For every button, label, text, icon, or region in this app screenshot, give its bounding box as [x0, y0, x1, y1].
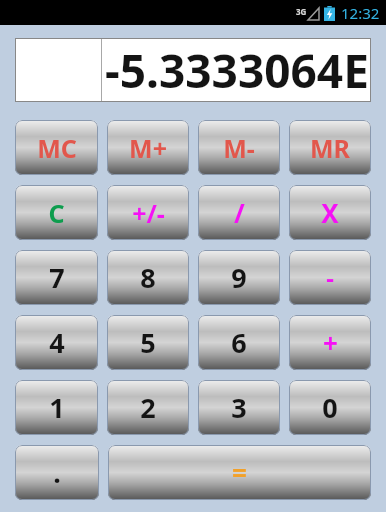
staticText: =	[232, 455, 247, 490]
button[interactable]: +	[289, 315, 371, 370]
other: Signal strength	[308, 8, 319, 20]
staticText: 7	[49, 259, 65, 296]
button[interactable]: -5.3333064E	[16, 39, 370, 101]
staticText: 3G	[296, 6, 307, 17]
staticText: +/-	[132, 196, 165, 230]
button[interactable]: +/-	[107, 185, 189, 240]
button[interactable]: 4	[15, 315, 98, 370]
button[interactable]: M+	[107, 120, 189, 175]
staticText: M-	[223, 131, 255, 165]
button[interactable]: .	[15, 445, 99, 500]
staticText: 6	[231, 324, 247, 361]
staticText: .	[53, 454, 61, 491]
button[interactable]: M-	[198, 120, 280, 175]
button[interactable]: -	[289, 250, 371, 305]
button[interactable]: X	[289, 185, 371, 240]
button[interactable]: MC	[15, 120, 98, 175]
button[interactable]: C	[15, 185, 98, 240]
staticText: 0	[322, 389, 338, 426]
staticText: 8	[140, 259, 156, 296]
staticText: 5	[140, 324, 156, 361]
staticText: 2	[140, 389, 156, 426]
staticText: 3	[231, 389, 247, 426]
staticText: 9	[231, 259, 247, 296]
button[interactable]: 7	[15, 250, 98, 305]
staticText: 1	[49, 389, 65, 426]
staticText: 4	[49, 324, 65, 361]
staticText: MR	[310, 131, 350, 165]
staticText: 12:32	[341, 3, 380, 23]
other: Battery charging	[324, 6, 335, 21]
staticText: -	[326, 261, 334, 294]
staticText: C	[48, 196, 65, 230]
button[interactable]: 2	[107, 380, 189, 435]
staticText: MC	[37, 131, 77, 165]
button[interactable]: =	[108, 445, 371, 500]
button[interactable]: 1	[15, 380, 98, 435]
staticText: -5.3333064E	[105, 39, 369, 101]
button[interactable]: 8	[107, 250, 189, 305]
button[interactable]: 6	[198, 315, 280, 370]
staticText: +	[323, 325, 338, 360]
button[interactable]: /	[198, 185, 280, 240]
button[interactable]: 9	[198, 250, 280, 305]
staticText: X	[321, 195, 339, 230]
button[interactable]: 5	[107, 315, 189, 370]
button[interactable]: 3	[198, 380, 280, 435]
button[interactable]: MR	[289, 120, 371, 175]
staticText: M+	[129, 131, 167, 165]
staticText: /	[234, 195, 245, 230]
button[interactable]: 0	[289, 380, 371, 435]
